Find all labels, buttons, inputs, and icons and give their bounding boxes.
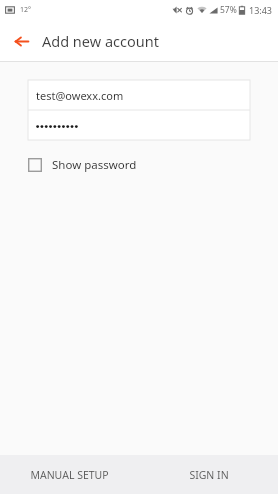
button[interactable]: Show password	[26, 152, 137, 178]
button[interactable]: SIGN IN	[139, 455, 278, 494]
button[interactable]: test@owexx.com	[28, 80, 250, 110]
staticText: 13:43	[249, 4, 273, 16]
staticText: 57%	[220, 4, 237, 16]
button[interactable]: MANUAL SETUP	[0, 455, 139, 494]
button[interactable]: Back	[9, 29, 33, 53]
staticText: 12°	[20, 5, 32, 15]
staticText: SIGN IN	[189, 468, 229, 482]
staticText: test@owexx.com	[36, 88, 124, 103]
staticText: Show password	[52, 157, 137, 173]
button[interactable]	[28, 110, 250, 140]
staticText: MANUAL SETUP	[30, 468, 109, 482]
staticText: Add new account	[42, 31, 159, 51]
